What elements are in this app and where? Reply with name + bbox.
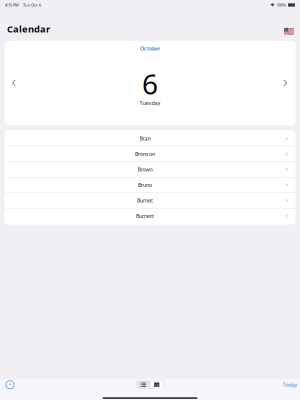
staticText: Brown xyxy=(137,166,152,173)
staticText: Burnet xyxy=(137,197,153,204)
staticText: Bronson xyxy=(135,150,155,158)
staticText: Tuesday xyxy=(139,99,160,106)
button[interactable]: Region xyxy=(284,27,294,35)
button[interactable]: Burnett xyxy=(4,208,295,223)
staticText: Calendar xyxy=(7,23,50,35)
staticText: Burnett xyxy=(136,212,154,220)
button[interactable]: Next day xyxy=(275,41,295,125)
button[interactable]: List view xyxy=(137,381,150,388)
staticText: 4:15 PM xyxy=(5,2,19,8)
button[interactable]: Burnet xyxy=(4,193,295,208)
button[interactable]: Bronson xyxy=(4,146,295,161)
button[interactable]: Today xyxy=(282,380,298,389)
button[interactable]: Bran xyxy=(4,131,295,146)
button[interactable]: Previous day xyxy=(4,41,24,125)
button[interactable]: Calendar view xyxy=(150,381,163,388)
staticText: 6 xyxy=(142,65,158,102)
staticText: 100% xyxy=(276,2,286,8)
staticText: Today xyxy=(282,381,297,388)
staticText: Bruno xyxy=(138,181,152,189)
button[interactable]: Time xyxy=(2,380,18,389)
staticText: 🇺🇸 xyxy=(284,26,294,35)
button[interactable]: Brown xyxy=(4,162,295,177)
staticText: Bran xyxy=(139,135,150,142)
button[interactable]: Bruno xyxy=(4,177,295,192)
staticText: October xyxy=(140,45,160,52)
staticText: Tue Oct 6 xyxy=(23,2,41,8)
